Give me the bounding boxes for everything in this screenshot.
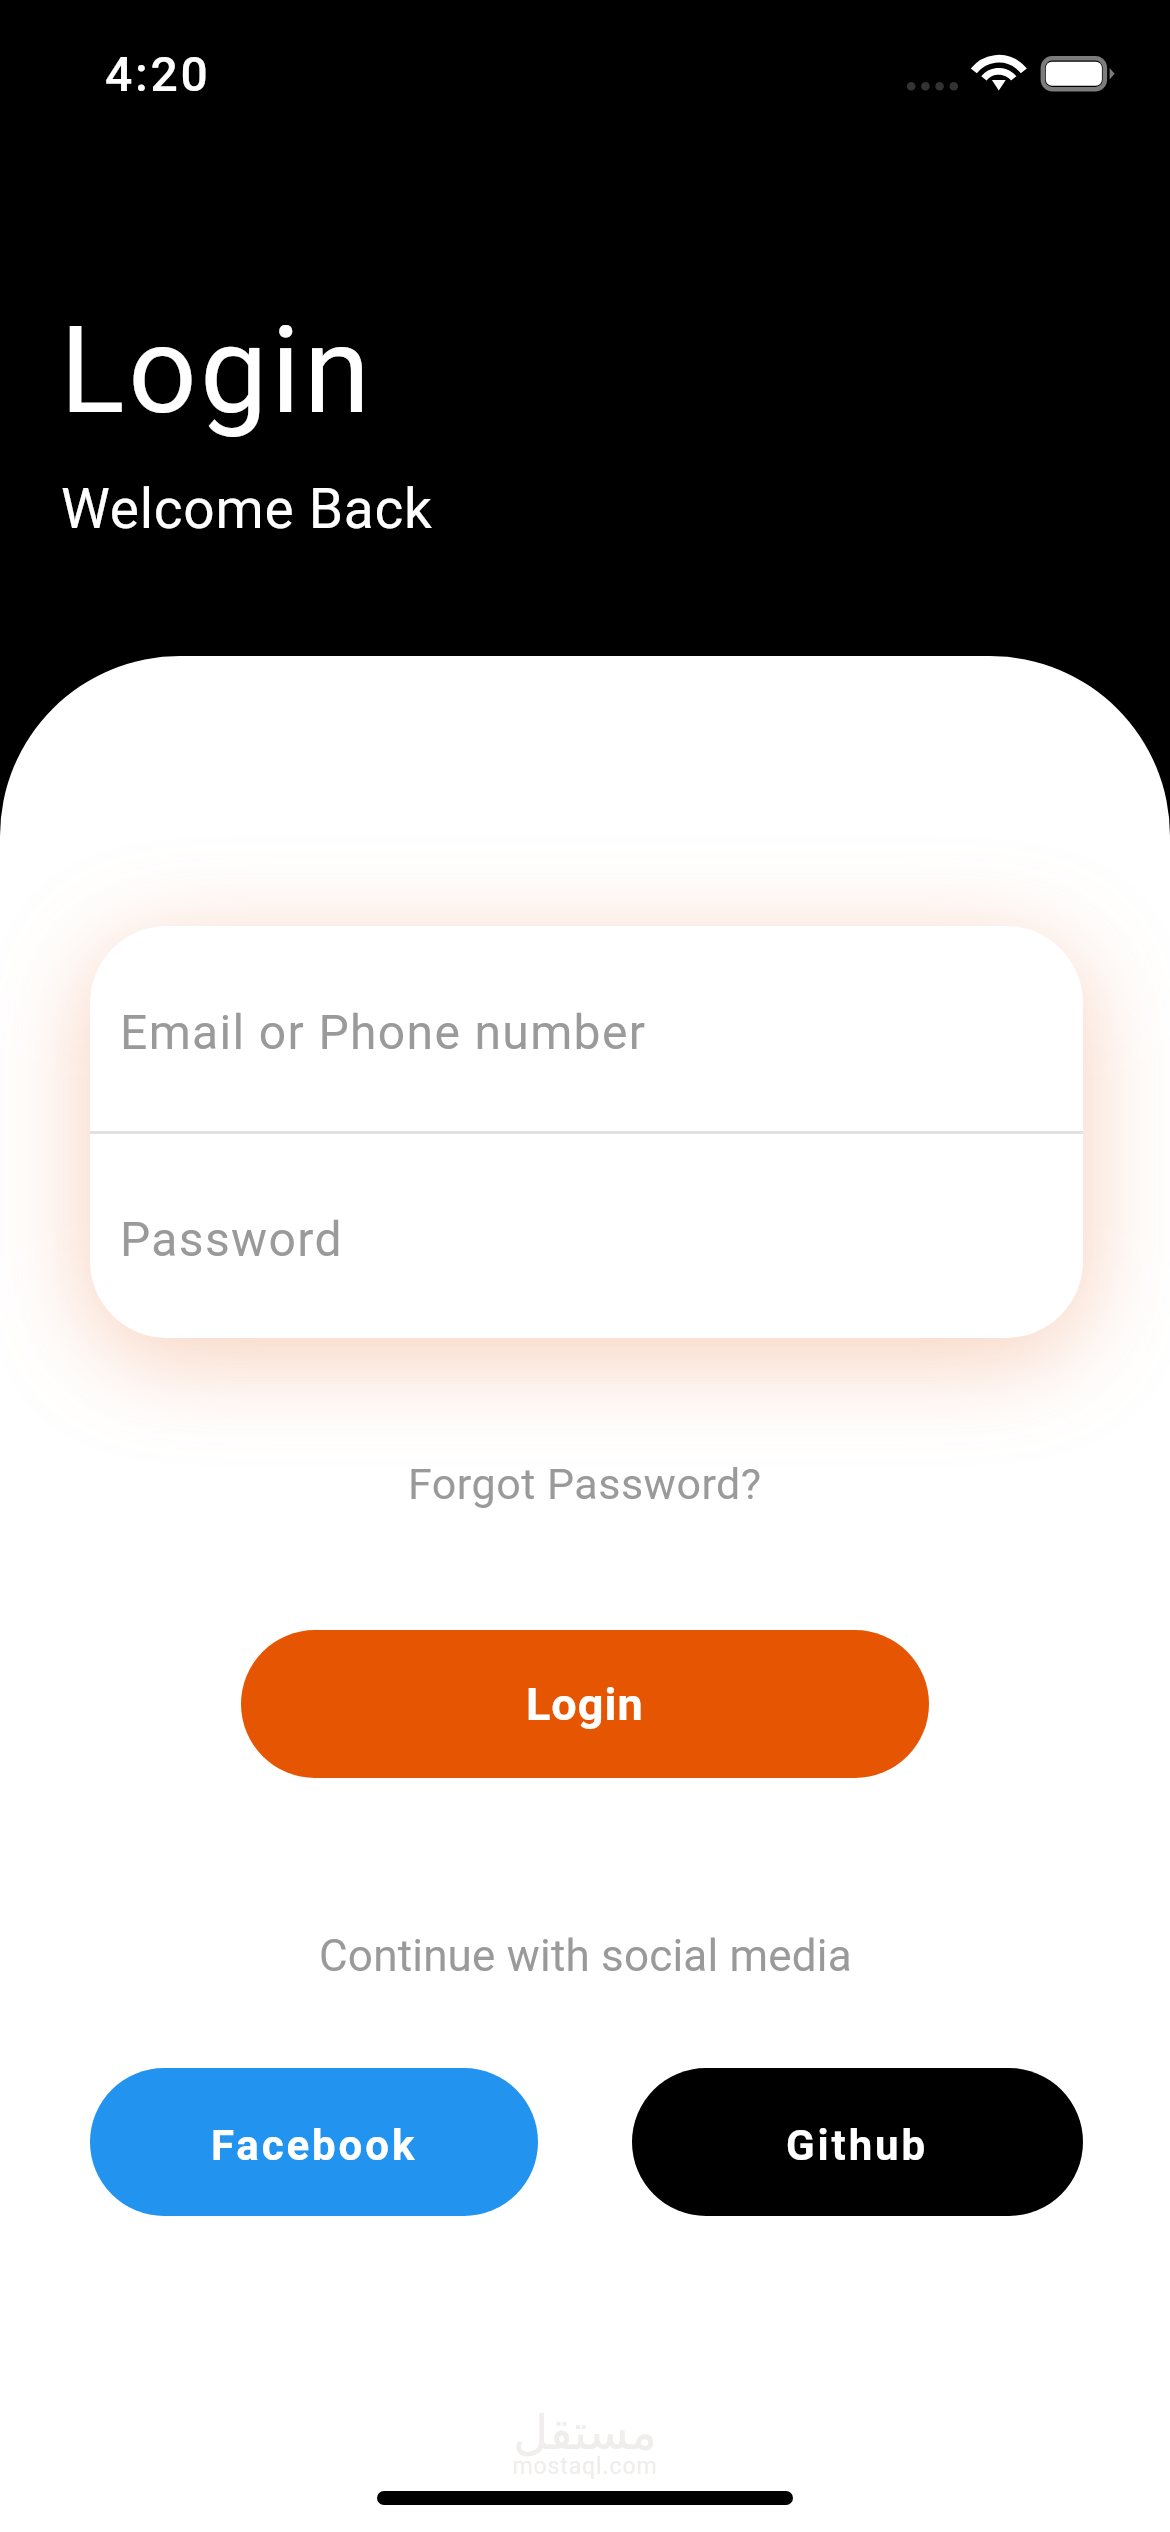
button[interactable]: Facebook xyxy=(90,2068,538,2216)
other: Battery xyxy=(1036,52,1120,96)
staticText: مستقل xyxy=(513,2404,657,2460)
button[interactable]: Login xyxy=(241,1630,929,1778)
staticText: Facebook xyxy=(211,2121,418,2170)
staticText: mostaql.com xyxy=(512,2453,658,2480)
staticText: Continue with social media xyxy=(319,1930,852,1982)
button[interactable]: Github xyxy=(632,2068,1083,2216)
button[interactable]: Forgot Password? xyxy=(384,1447,786,1521)
staticText: Forgot Password? xyxy=(408,1459,762,1509)
staticText: Login xyxy=(526,1678,644,1731)
button[interactable]: Password xyxy=(90,1134,1083,1338)
other: Wi-Fi xyxy=(970,50,1028,96)
staticText: Password xyxy=(120,1211,343,1267)
other: Cellular signal xyxy=(903,78,963,96)
staticText: Login xyxy=(60,301,374,442)
staticText: Welcome Back xyxy=(61,477,433,541)
staticText: Github xyxy=(786,2121,929,2170)
staticText: 4:20 xyxy=(105,46,211,102)
staticText: Email or Phone number xyxy=(120,1004,647,1060)
button[interactable]: Email or Phone number xyxy=(90,926,1083,1131)
